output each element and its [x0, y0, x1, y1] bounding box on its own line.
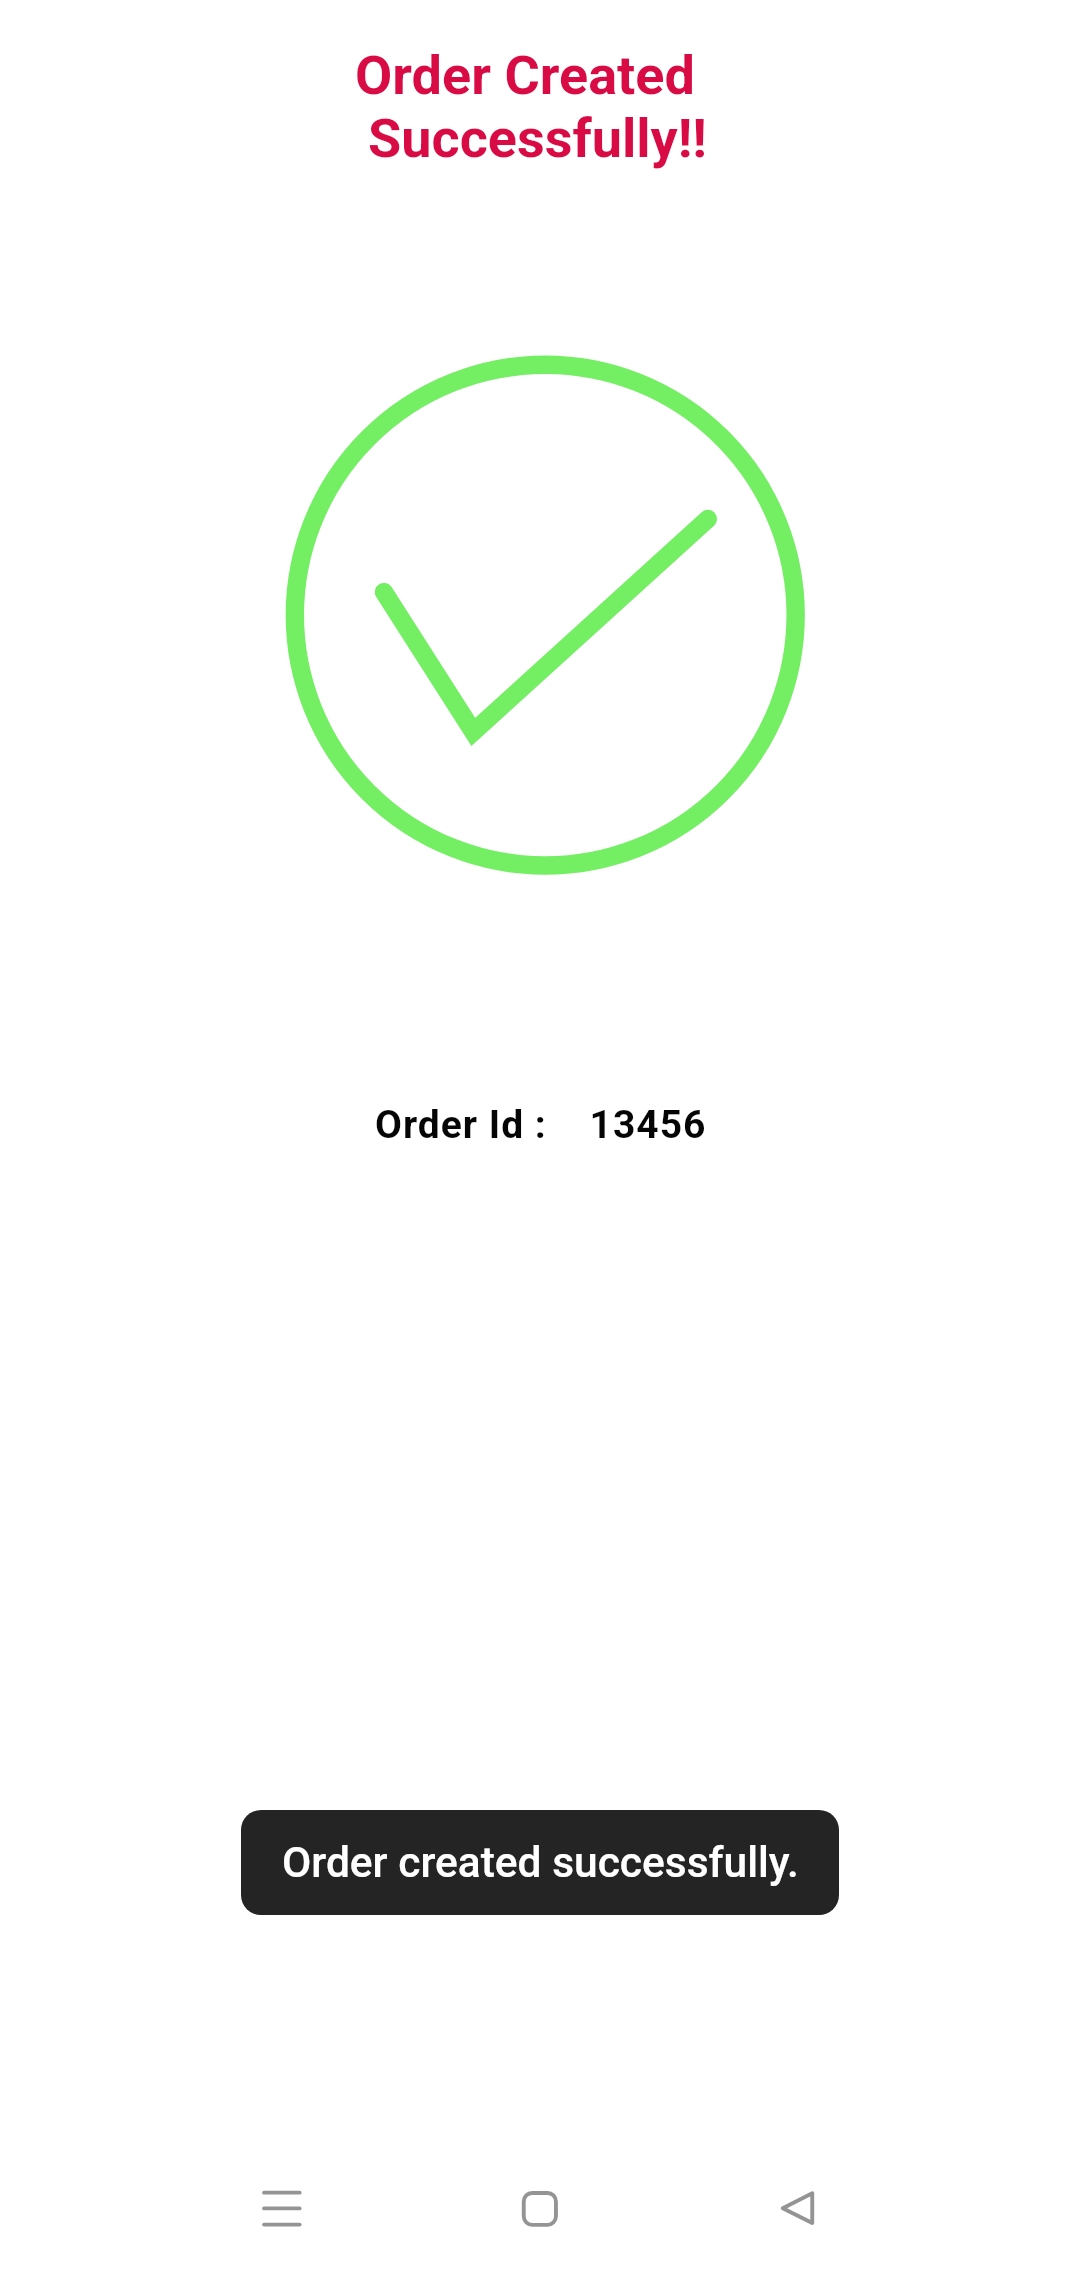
other: Order placed successfully: [245, 315, 845, 915]
button[interactable]: Back: [726, 2136, 870, 2275]
button[interactable]: Order created successfully.: [241, 1810, 839, 1915]
staticText: Order created successfully.: [282, 1838, 799, 1888]
staticText: Order Created: [355, 44, 695, 107]
button[interactable]: Home: [468, 2136, 612, 2275]
button[interactable]: Recent apps: [210, 2136, 354, 2275]
staticText: Order Id : 13456: [375, 1102, 707, 1148]
staticText: Successfully!!: [368, 107, 707, 170]
